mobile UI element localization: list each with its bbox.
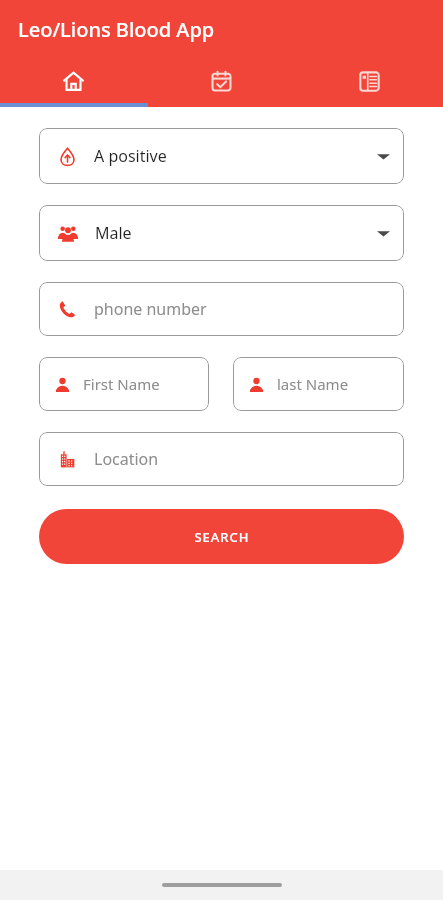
staticText: last Name [277,374,390,394]
button[interactable]: Appointments [147,59,295,103]
button[interactable]: First Name [39,357,209,411]
button[interactable]: last Name [233,357,404,411]
button[interactable]: SEARCH [39,509,404,564]
button[interactable]: Location [39,432,404,486]
staticText: Male [95,222,377,244]
staticText: First Name [83,374,195,394]
staticText: SEARCH [194,528,250,546]
button[interactable]: Requests [295,59,443,103]
staticText: A positive [94,145,377,167]
staticText: Location [94,448,390,470]
button[interactable]: phone number [39,282,404,336]
button[interactable]: Male [39,205,404,261]
button[interactable]: Home [0,59,147,103]
button[interactable]: A positive [39,128,404,184]
staticText: phone number [94,298,390,320]
staticText: Leo/Lions Blood App [18,16,215,43]
